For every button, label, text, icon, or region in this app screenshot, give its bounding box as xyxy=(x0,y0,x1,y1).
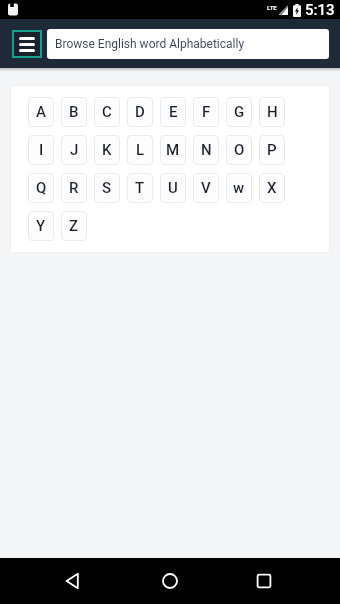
staticText: 5:13 xyxy=(305,1,335,19)
staticText: F xyxy=(202,103,211,121)
staticText: Browse English word Alphabetically xyxy=(55,37,245,51)
button[interactable]: Browse English word Alphabetically xyxy=(47,29,329,59)
button[interactable]: N xyxy=(193,135,219,165)
staticText: B xyxy=(69,103,79,121)
staticText: Z xyxy=(69,217,79,235)
staticText: C xyxy=(102,103,112,121)
button[interactable]: S xyxy=(94,173,120,203)
staticText: D xyxy=(135,103,145,121)
staticText: H xyxy=(267,103,278,121)
staticText: S xyxy=(102,179,112,197)
button[interactable]: R xyxy=(61,173,87,203)
staticText: Y xyxy=(36,217,46,235)
button[interactable]: D xyxy=(127,97,153,127)
button[interactable]: Y xyxy=(28,211,54,241)
staticText: X xyxy=(267,179,277,197)
button[interactable]: A xyxy=(28,97,54,127)
button[interactable] xyxy=(162,573,178,589)
button[interactable]: C xyxy=(94,97,120,127)
staticText: A xyxy=(36,103,46,121)
button[interactable]: U xyxy=(160,173,186,203)
button[interactable]: J xyxy=(61,135,87,165)
button[interactable]: G xyxy=(226,97,252,127)
staticText: P xyxy=(267,141,277,159)
staticText: U xyxy=(168,179,178,197)
staticText: I xyxy=(39,141,44,159)
staticText: N xyxy=(201,141,212,159)
button[interactable] xyxy=(256,573,272,589)
button[interactable]: I xyxy=(28,135,54,165)
staticText: w xyxy=(233,179,245,197)
staticText: R xyxy=(69,179,79,197)
button[interactable] xyxy=(12,30,42,58)
button[interactable]: w xyxy=(226,173,252,203)
button[interactable]: V xyxy=(193,173,219,203)
button[interactable]: K xyxy=(94,135,120,165)
button[interactable]: L xyxy=(127,135,153,165)
button[interactable]: T xyxy=(127,173,153,203)
staticText: O xyxy=(234,141,245,159)
staticText: L xyxy=(136,141,145,159)
button[interactable]: H xyxy=(259,97,285,127)
staticText: T xyxy=(135,179,145,197)
button[interactable]: Q xyxy=(28,173,54,203)
staticText: K xyxy=(102,141,112,159)
staticText: E xyxy=(169,103,178,121)
staticText: V xyxy=(201,179,211,197)
staticText: J xyxy=(70,141,79,159)
staticText: G xyxy=(234,103,245,121)
button[interactable]: B xyxy=(61,97,87,127)
button[interactable]: F xyxy=(193,97,219,127)
button[interactable]: X xyxy=(259,173,285,203)
staticText: M xyxy=(166,141,180,159)
button[interactable]: P xyxy=(259,135,285,165)
button[interactable]: Z xyxy=(61,211,87,241)
staticText: Q xyxy=(36,179,47,197)
button[interactable]: M xyxy=(160,135,186,165)
button[interactable]: O xyxy=(226,135,252,165)
staticText: LTE xyxy=(267,4,277,11)
button[interactable]: E xyxy=(160,97,186,127)
button[interactable] xyxy=(65,573,81,589)
